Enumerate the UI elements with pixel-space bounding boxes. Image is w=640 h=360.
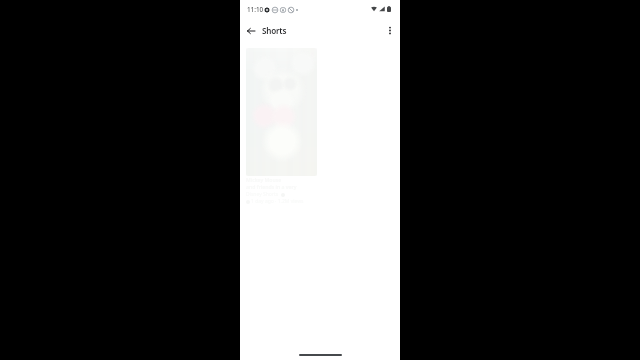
button[interactable]: More options [383,24,396,37]
button[interactable]: Back [244,24,257,37]
staticText: 11:10 [247,5,264,14]
staticText: Shorts [262,25,287,36]
